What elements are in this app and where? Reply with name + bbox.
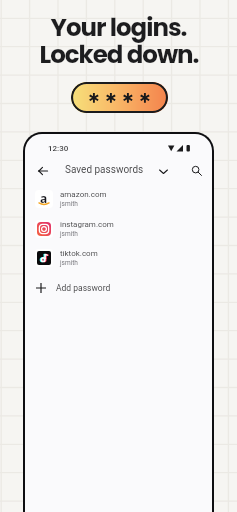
button[interactable]: Saved passwords	[65, 162, 144, 178]
staticText: amazon.com	[60, 190, 107, 199]
button[interactable]: Add password	[25, 276, 212, 300]
button[interactable]: a	[25, 184, 212, 213]
staticText: jsmith	[60, 200, 78, 208]
button[interactable]: tiktok.com	[25, 243, 212, 272]
staticText: Your logins.	[50, 10, 187, 44]
staticText: a	[40, 190, 48, 206]
button[interactable]: instagram.com	[25, 214, 212, 243]
button[interactable]: Search	[186, 160, 206, 180]
staticText: instagram.com	[60, 220, 114, 229]
staticText: 12:30	[48, 144, 69, 153]
staticText: Add password	[56, 283, 111, 293]
button[interactable]: Back	[33, 161, 53, 181]
staticText: tiktok.com	[60, 249, 98, 258]
staticText: jsmith	[60, 259, 78, 267]
staticText: Locked down.	[39, 37, 199, 71]
button[interactable]: Expand menu	[153, 161, 173, 181]
staticText: Saved passwords	[65, 164, 144, 176]
button[interactable]: Password	[71, 82, 168, 113]
staticText: jsmith	[60, 230, 78, 238]
